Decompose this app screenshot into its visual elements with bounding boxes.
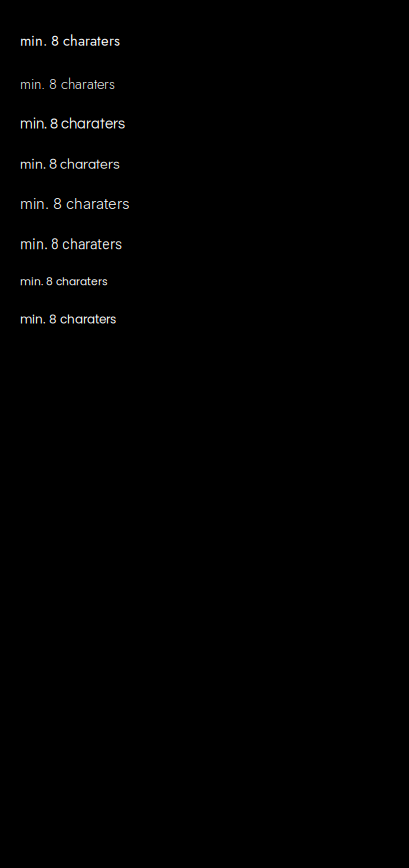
staticText: min. 8 charaters bbox=[20, 116, 125, 131]
staticText: min. 8 charaters bbox=[20, 311, 116, 328]
staticText: min. 8 charaters bbox=[20, 30, 120, 51]
staticText: min. 8 charaters bbox=[20, 195, 130, 212]
staticText: min. 8 charaters bbox=[20, 153, 120, 173]
staticText: min. 8 charaters bbox=[20, 73, 115, 94]
staticText: min. 8 charaters bbox=[20, 234, 122, 252]
staticText: min. 8 charaters bbox=[20, 274, 108, 289]
